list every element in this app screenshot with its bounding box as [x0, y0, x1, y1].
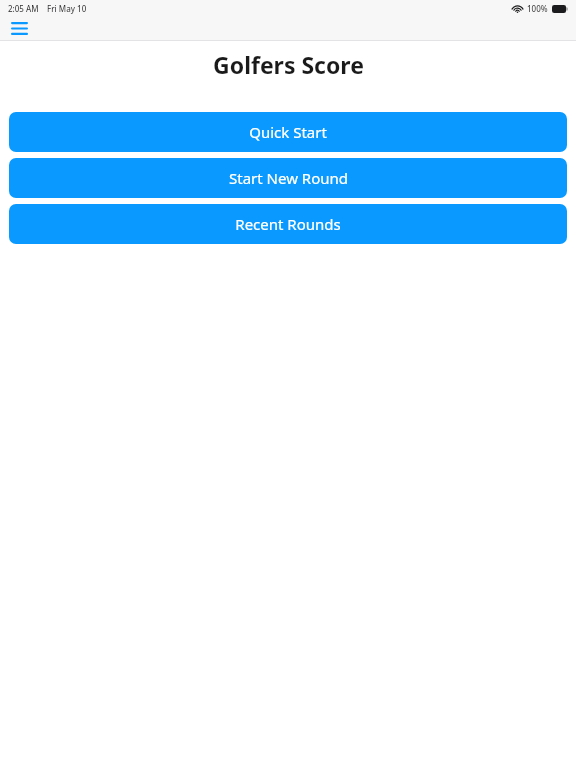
- button[interactable]: Quick Start: [9, 112, 567, 152]
- staticText: Fri May 10: [47, 3, 87, 14]
- staticText: Recent Rounds: [235, 214, 341, 234]
- staticText: Golfers Score: [213, 49, 364, 80]
- staticText: Quick Start: [249, 122, 327, 142]
- staticText: Start New Round: [229, 168, 348, 188]
- staticText: 2:05 AM: [8, 3, 39, 14]
- staticText: 100%: [527, 3, 548, 14]
- button[interactable]: Menu: [5, 16, 33, 41]
- button[interactable]: Start New Round: [9, 158, 567, 198]
- button[interactable]: Recent Rounds: [9, 204, 567, 244]
